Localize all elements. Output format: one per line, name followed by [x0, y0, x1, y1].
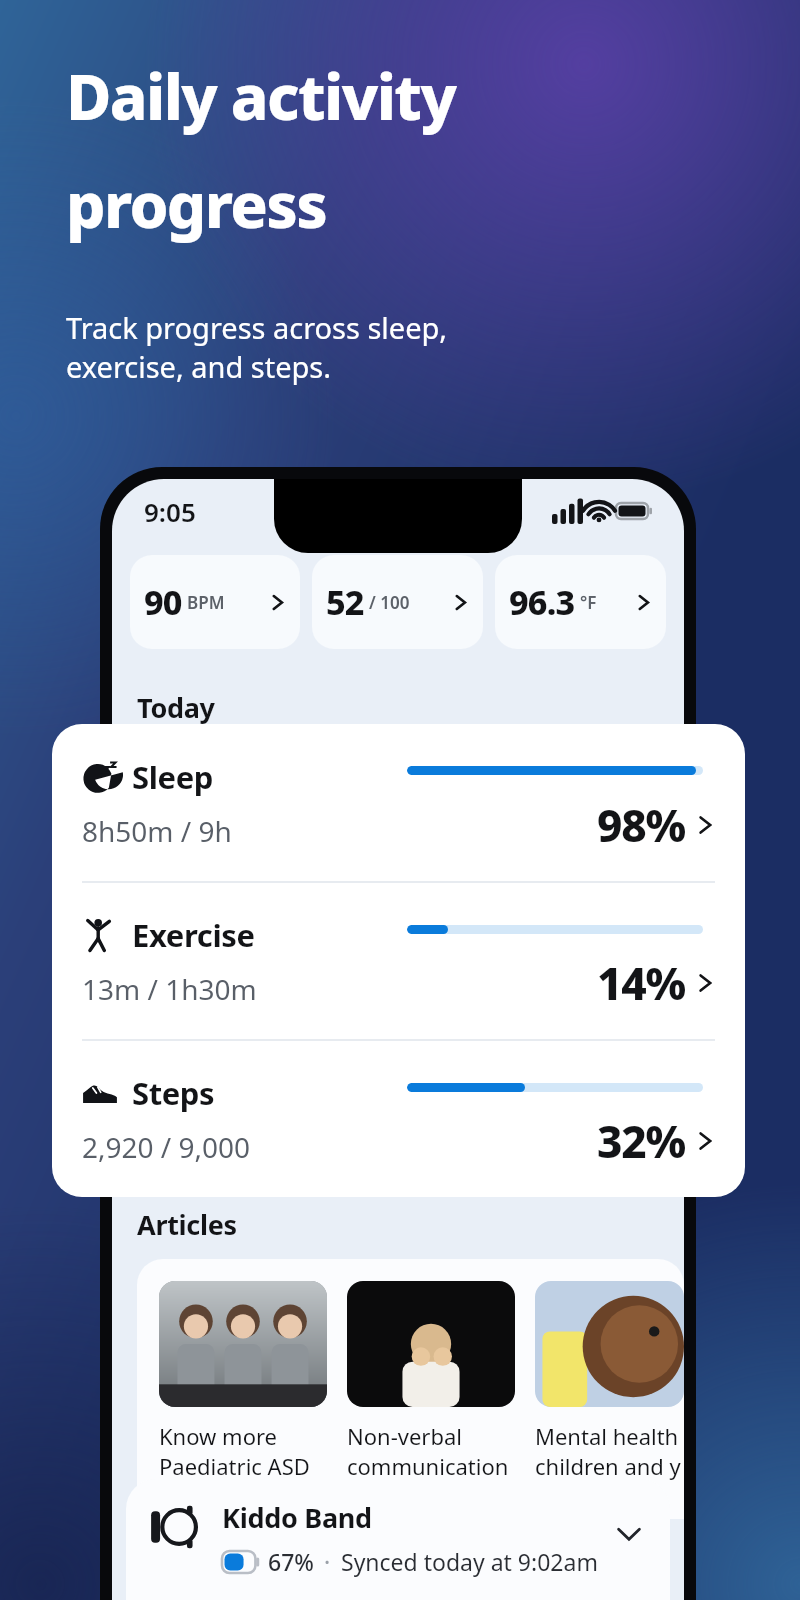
staticText: Non-verbal — [347, 1421, 462, 1451]
button[interactable]: Steps — [52, 1041, 745, 1197]
staticText: communication — [347, 1451, 509, 1481]
staticText: Track progress across sleep, — [66, 308, 448, 347]
staticText: Know more about the — [159, 1421, 327, 1451]
staticText: Steps — [132, 1072, 215, 1114]
staticText: Daily activity — [66, 54, 456, 138]
button[interactable]: Mental health — [535, 1281, 684, 1481]
button[interactable]: 96.3 — [495, 555, 666, 649]
staticText: Articles — [137, 1206, 237, 1243]
staticText: Today — [137, 689, 215, 726]
staticText: 90 — [144, 579, 182, 625]
staticText: 9:05 — [144, 494, 196, 529]
staticText: Mental health — [535, 1421, 679, 1451]
staticText: / 100 — [369, 591, 410, 614]
staticText: 14% — [597, 953, 685, 1013]
staticText: °F — [580, 591, 597, 614]
button[interactable]: Sleep — [52, 724, 745, 881]
staticText: progress — [66, 162, 327, 246]
staticText: Kiddo Band — [222, 1499, 372, 1536]
button[interactable]: Know more about the — [159, 1281, 327, 1481]
staticText: 2,920 / 9,000 — [82, 1128, 251, 1166]
staticText: exercise, and steps. — [66, 347, 332, 386]
staticText: 8h50m / 9h — [82, 812, 232, 850]
button[interactable]: Kiddo Band — [126, 1479, 670, 1600]
staticText: children and y — [535, 1451, 681, 1481]
button[interactable]: Non-verbal — [347, 1281, 515, 1481]
staticText: Exercise — [132, 914, 255, 956]
staticText: 52 — [326, 579, 364, 625]
staticText: 96.3 — [509, 579, 575, 625]
staticText: · — [324, 1546, 331, 1577]
staticText: BPM — [187, 591, 225, 614]
staticText: 67% — [268, 1546, 314, 1577]
staticText: 98% — [597, 795, 685, 855]
button[interactable]: 52 — [312, 555, 483, 649]
staticText: Synced today at 9:02am — [341, 1546, 598, 1577]
button[interactable]: Exercise — [52, 883, 745, 1039]
staticText: Sleep — [132, 756, 213, 798]
button[interactable]: Expand device details — [612, 1517, 646, 1551]
staticText: Paediatric ASD — [159, 1451, 310, 1481]
button[interactable]: 90 — [130, 555, 300, 649]
staticText: 32% — [597, 1111, 685, 1171]
staticText: 13m / 1h30m — [82, 970, 257, 1008]
